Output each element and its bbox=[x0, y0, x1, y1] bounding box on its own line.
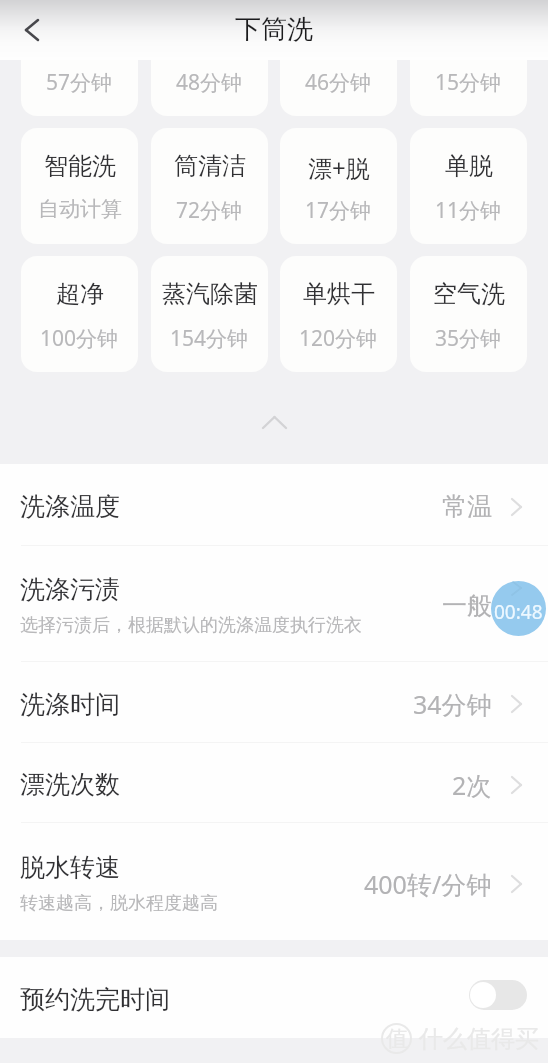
button[interactable]: 洗涤温度 bbox=[0, 464, 548, 545]
button[interactable]: Back bbox=[11, 9, 53, 51]
staticText: 34分钟 bbox=[413, 687, 492, 721]
button[interactable]: 漂洗次数 bbox=[0, 743, 548, 822]
button[interactable]: 漂+脱 bbox=[280, 128, 397, 244]
staticText: 智能洗 bbox=[44, 151, 116, 181]
button[interactable]: 超净 bbox=[21, 256, 138, 372]
button[interactable]: Collapse modes bbox=[238, 401, 310, 443]
staticText: 筒清洁 bbox=[174, 151, 246, 181]
staticText: 11分钟 bbox=[435, 196, 502, 225]
button[interactable]: 单烘干 bbox=[280, 256, 397, 372]
staticText: 漂洗次数 bbox=[20, 769, 120, 800]
button[interactable]: 空气洗 bbox=[410, 256, 527, 372]
staticText: 400转/分钟 bbox=[364, 867, 492, 901]
staticText: 智能洗 bbox=[44, 23, 116, 53]
button[interactable]: 洗涤污渍 bbox=[0, 546, 548, 661]
staticText: 选择污渍后，根据默认的洗涤温度执行洗衣 bbox=[20, 614, 362, 637]
button[interactable]: 洗涤时间 bbox=[0, 662, 548, 742]
staticText: 17分钟 bbox=[305, 196, 372, 225]
staticText: 00:48 bbox=[494, 599, 543, 625]
button[interactable]: 蒸汽除菌 bbox=[151, 256, 268, 372]
staticText: 转速越高，脱水程度越高 bbox=[20, 892, 218, 915]
button[interactable]: 单脱 bbox=[410, 0, 527, 116]
staticText: 空气洗 bbox=[433, 279, 505, 309]
staticText: 下筒洗 bbox=[235, 13, 313, 46]
staticText: 超净 bbox=[56, 279, 104, 309]
staticText: 单烘干 bbox=[303, 279, 375, 309]
button[interactable]: 筒清洁 bbox=[151, 128, 268, 244]
staticText: 值 bbox=[386, 1025, 408, 1053]
staticText: 漂+脱 bbox=[308, 151, 370, 184]
staticText: 72分钟 bbox=[176, 196, 243, 225]
staticText: 预约洗完时间 bbox=[20, 984, 170, 1015]
staticText: 洗涤时间 bbox=[20, 689, 120, 720]
button[interactable]: Toggle scheduled finish bbox=[469, 980, 527, 1010]
staticText: 蒸汽除菌 bbox=[162, 279, 258, 309]
button[interactable]: 智能洗 bbox=[21, 128, 138, 244]
staticText: 什么值得买 bbox=[419, 1024, 539, 1054]
staticText: 35分钟 bbox=[435, 324, 502, 353]
staticText: 48分钟 bbox=[176, 68, 243, 97]
staticText: 单脱 bbox=[445, 151, 493, 181]
staticText: 46分钟 bbox=[305, 68, 372, 97]
staticText: 单脱 bbox=[445, 23, 493, 53]
staticText: 漂+脱 bbox=[308, 23, 370, 56]
staticText: 洗涤温度 bbox=[20, 491, 120, 522]
staticText: 筒清洁 bbox=[174, 23, 246, 53]
staticText: 120分钟 bbox=[299, 324, 378, 353]
staticText: 15分钟 bbox=[435, 68, 502, 97]
button[interactable]: 脱水转速 bbox=[0, 823, 548, 940]
button[interactable]: 单脱 bbox=[410, 128, 527, 244]
button[interactable]: 智能洗 bbox=[21, 0, 138, 116]
staticText: 脱水转速 bbox=[20, 852, 120, 883]
staticText: 2次 bbox=[452, 768, 492, 802]
staticText: 100分钟 bbox=[40, 324, 119, 353]
staticText: 常温 bbox=[442, 491, 492, 522]
staticText: 一般 bbox=[442, 590, 492, 621]
button[interactable]: 漂+脱 bbox=[280, 0, 397, 116]
staticText: 154分钟 bbox=[170, 324, 249, 353]
staticText: 57分钟 bbox=[46, 68, 113, 97]
staticText: 自动计算 bbox=[38, 196, 122, 222]
staticText: 洗涤污渍 bbox=[20, 574, 120, 605]
button[interactable]: 筒清洁 bbox=[151, 0, 268, 116]
